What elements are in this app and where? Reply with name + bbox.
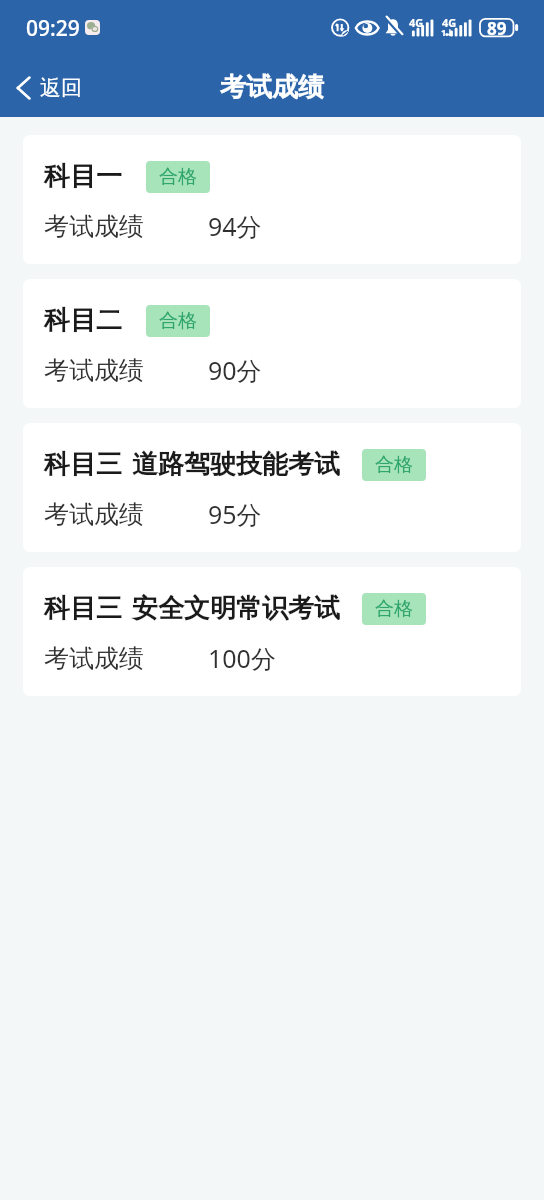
staticText: 100分 — [208, 641, 276, 675]
staticText: 安全文明常识考试 — [132, 592, 340, 625]
staticText: 89 — [487, 17, 507, 40]
button[interactable]: 返回 — [0, 67, 94, 109]
staticText: 考试成绩 — [44, 643, 144, 674]
staticText: 科目一 — [44, 160, 122, 193]
staticText: 1↓ — [441, 26, 454, 38]
button[interactable]: 科目三 — [23, 567, 521, 696]
staticText: 考试成绩 — [44, 211, 144, 242]
staticText: 考试成绩 — [44, 355, 144, 386]
staticText: 合格 — [375, 453, 413, 477]
staticText: 科目三 — [44, 448, 122, 481]
staticText: 4G — [442, 15, 457, 30]
button[interactable]: 科目二 — [23, 279, 521, 408]
staticText: 考试成绩 — [220, 71, 324, 104]
staticText: 合格 — [159, 309, 197, 333]
staticText: 90分 — [208, 353, 262, 387]
staticText: 科目二 — [44, 304, 122, 337]
staticText: 科目三 — [44, 592, 122, 625]
staticText: 道路驾驶技能考试 — [132, 448, 340, 481]
staticText: 返回 — [40, 75, 82, 101]
staticText: 合格 — [159, 165, 197, 189]
staticText: 合格 — [375, 597, 413, 621]
staticText: 94分 — [208, 209, 262, 243]
staticText: 考试成绩 — [44, 499, 144, 530]
button[interactable]: 科目三 — [23, 423, 521, 552]
staticText: 09:29 — [26, 14, 80, 43]
staticText: 4G — [409, 15, 424, 30]
button[interactable]: 科目一 — [23, 135, 521, 264]
staticText: 95分 — [208, 497, 262, 531]
